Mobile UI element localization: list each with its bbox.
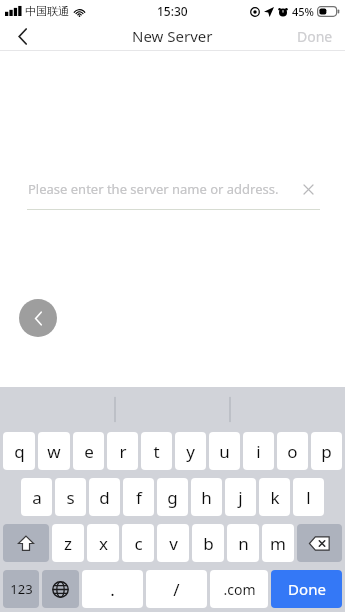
button[interactable]: o xyxy=(277,432,308,470)
staticText: n xyxy=(238,532,249,555)
staticText: r xyxy=(119,440,127,463)
staticText: Done xyxy=(288,579,326,599)
button[interactable]: Please enter the server name or address. xyxy=(0,171,345,207)
staticText: 123 xyxy=(10,580,33,598)
button[interactable]: k xyxy=(259,478,290,516)
button[interactable]: Backspace xyxy=(297,524,342,562)
button[interactable]: a xyxy=(21,478,52,516)
button[interactable]: q xyxy=(3,432,35,470)
button[interactable]: f xyxy=(123,478,154,516)
button[interactable]: u xyxy=(209,432,240,470)
staticText: .com xyxy=(223,580,256,599)
button[interactable]: Clear text xyxy=(297,178,319,200)
staticText: 45% xyxy=(292,4,314,19)
staticText: v xyxy=(169,532,178,555)
staticText: d xyxy=(99,486,110,509)
staticText: o xyxy=(287,440,298,463)
button[interactable]: w xyxy=(38,432,70,470)
staticText: e xyxy=(84,440,94,463)
button[interactable]: v xyxy=(157,524,189,562)
staticText: Done xyxy=(297,27,333,46)
button[interactable]: Done xyxy=(271,570,342,608)
staticText: x xyxy=(99,532,108,555)
button[interactable]: i xyxy=(243,432,274,470)
staticText: z xyxy=(64,532,72,555)
staticText: y xyxy=(186,440,195,463)
button[interactable]: l xyxy=(293,478,324,516)
button[interactable]: Done xyxy=(285,22,345,50)
button[interactable]: .com xyxy=(210,570,268,608)
staticText: 中国联通 xyxy=(25,4,69,18)
button[interactable]: y xyxy=(175,432,206,470)
staticText: p xyxy=(321,440,332,463)
button[interactable]: e xyxy=(73,432,104,470)
button[interactable]: Back xyxy=(0,22,46,50)
staticText: New Server xyxy=(132,26,213,46)
staticText: t xyxy=(153,440,160,463)
button[interactable]: Change keyboard xyxy=(42,570,79,608)
button[interactable]: n xyxy=(227,524,259,562)
button[interactable]: c xyxy=(122,524,154,562)
staticText: m xyxy=(270,532,286,555)
staticText: a xyxy=(32,486,42,509)
button[interactable]: d xyxy=(89,478,120,516)
staticText: l xyxy=(306,486,311,509)
staticText: u xyxy=(219,440,230,463)
button[interactable]: m xyxy=(262,524,294,562)
button[interactable]: Back xyxy=(19,299,57,337)
button[interactable]: z xyxy=(52,524,84,562)
staticText: k xyxy=(270,486,280,509)
button[interactable]: x xyxy=(87,524,119,562)
staticText: . xyxy=(110,578,115,601)
staticText: b xyxy=(203,532,214,555)
staticText: f xyxy=(136,486,142,509)
button[interactable]: 123 xyxy=(3,570,39,608)
staticText: / xyxy=(173,578,180,601)
button[interactable]: g xyxy=(157,478,188,516)
staticText: j xyxy=(238,486,243,509)
button[interactable]: j xyxy=(225,478,256,516)
staticText: i xyxy=(256,440,261,463)
staticText: s xyxy=(66,486,75,509)
button[interactable]: / xyxy=(146,570,207,608)
staticText: c xyxy=(134,532,143,555)
button[interactable]: Shift xyxy=(3,524,49,562)
button[interactable]: r xyxy=(107,432,138,470)
button[interactable]: t xyxy=(141,432,172,470)
staticText: h xyxy=(201,486,212,509)
staticText: 15:30 xyxy=(157,3,188,19)
button[interactable]: p xyxy=(311,432,342,470)
staticText: w xyxy=(47,440,61,463)
staticText: Please enter the server name or address. xyxy=(28,180,279,198)
button[interactable]: s xyxy=(55,478,86,516)
button[interactable]: . xyxy=(82,570,143,608)
staticText: g xyxy=(167,486,178,509)
button[interactable]: h xyxy=(191,478,222,516)
button[interactable]: b xyxy=(192,524,224,562)
staticText: q xyxy=(14,440,25,463)
